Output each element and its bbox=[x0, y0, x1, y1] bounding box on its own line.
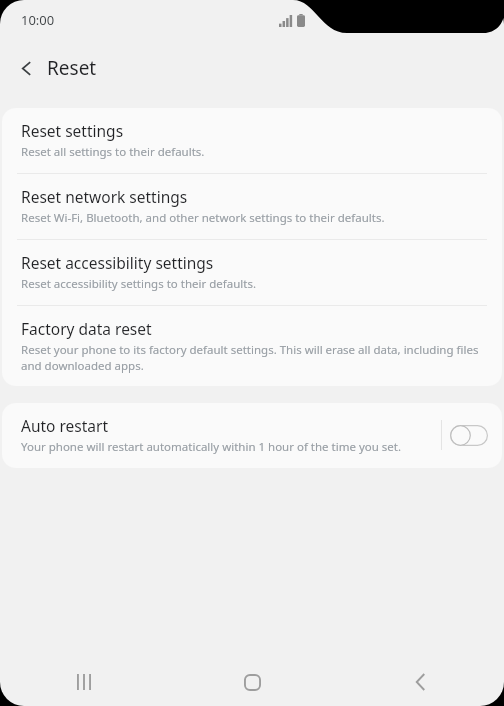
staticText: Reset Wi-Fi, Bluetooth, and other networ… bbox=[21, 210, 385, 226]
staticText: Reset all settings to their defaults. bbox=[21, 144, 205, 160]
staticText: Reset bbox=[47, 55, 97, 81]
staticText: Reset network settings bbox=[21, 186, 188, 207]
staticText: Reset your phone to its factory default … bbox=[21, 342, 483, 373]
button[interactable]: Reset settings bbox=[2, 108, 502, 173]
staticText: Reset settings bbox=[21, 120, 124, 141]
button[interactable]: Back bbox=[10, 51, 44, 85]
button[interactable]: Home bbox=[168, 658, 336, 706]
button[interactable]: Reset network settings bbox=[2, 174, 502, 239]
staticText: Reset accessibility settings to their de… bbox=[21, 276, 256, 292]
button[interactable]: Recent apps bbox=[0, 658, 168, 706]
staticText: Reset accessibility settings bbox=[21, 252, 214, 273]
button[interactable]: Auto restart bbox=[2, 403, 502, 468]
button[interactable]: Back bbox=[336, 658, 504, 706]
staticText: Factory data reset bbox=[21, 318, 152, 339]
staticText: 10:00 bbox=[21, 11, 55, 29]
button[interactable]: Factory data reset bbox=[2, 306, 502, 386]
button[interactable]: Reset accessibility settings bbox=[2, 240, 502, 305]
staticText: Your phone will restart automatically wi… bbox=[21, 439, 402, 455]
staticText: Auto restart bbox=[21, 415, 109, 436]
button[interactable]: Auto restart toggle bbox=[449, 422, 489, 448]
